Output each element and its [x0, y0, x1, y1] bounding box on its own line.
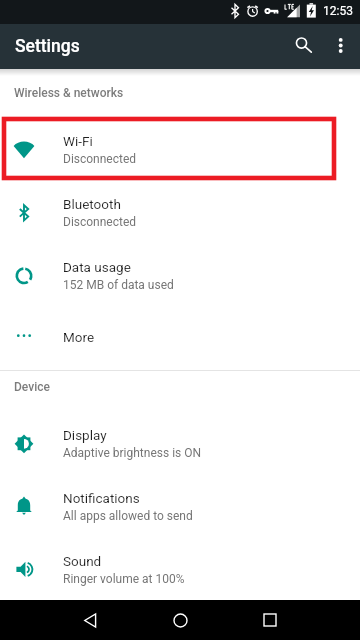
staticText: Wireless & networks	[14, 86, 124, 100]
staticText: Sound	[63, 553, 102, 569]
button[interactable]: Back	[55, 600, 125, 640]
staticText: Bluetooth	[63, 196, 121, 212]
staticText: Settings	[15, 36, 80, 57]
button[interactable]: More options	[324, 24, 358, 69]
staticText: Data usage	[63, 259, 131, 275]
button[interactable]: Display	[0, 410, 360, 473]
staticText: Ringer volume at 100%	[63, 572, 185, 586]
button[interactable]: Home	[145, 600, 215, 640]
button[interactable]: Wi-Fi	[0, 116, 360, 179]
staticText: Display	[63, 427, 107, 443]
staticText: 12:53	[323, 4, 353, 18]
staticText: Disconnected	[63, 215, 137, 229]
button[interactable]: Notifications	[0, 473, 360, 536]
button[interactable]: Recent apps	[235, 600, 305, 640]
staticText: 152 MB of data used	[63, 278, 174, 292]
staticText: All apps allowed to send	[63, 509, 193, 523]
staticText: More	[63, 329, 95, 345]
staticText: Disconnected	[63, 152, 137, 166]
button[interactable]: Search	[282, 24, 322, 69]
button[interactable]: More	[0, 305, 360, 368]
staticText: Adaptive brightness is ON	[63, 446, 202, 460]
staticText: Notifications	[63, 490, 140, 506]
button[interactable]: Bluetooth	[0, 179, 360, 242]
staticText: Device	[14, 380, 50, 394]
button[interactable]: Sound	[0, 536, 360, 599]
staticText: Wi-Fi	[63, 133, 93, 149]
button[interactable]: Data usage	[0, 242, 360, 305]
